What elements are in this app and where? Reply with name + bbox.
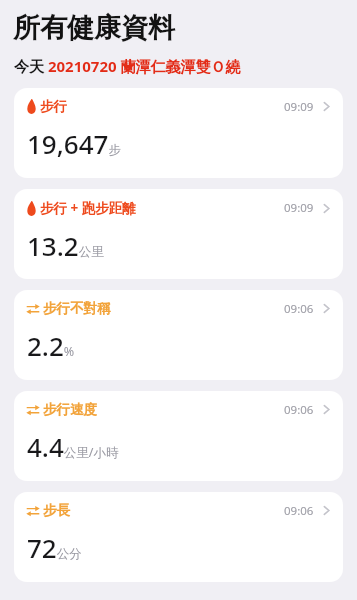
staticText: 09:06 — [284, 301, 314, 317]
staticText: 今天 20210720 蘭潭仁義潭雙Ｏ繞 — [14, 56, 241, 76]
other: Open details — [322, 302, 331, 315]
staticText: 所有健康資料 — [13, 11, 175, 45]
other: Gait metric icon — [26, 403, 40, 417]
staticText: 4.4公里/小時 — [27, 429, 119, 464]
button[interactable]: Walking flame icon — [14, 189, 343, 279]
staticText: 09:09 — [284, 99, 314, 115]
other: Gait metric icon — [26, 302, 40, 316]
staticText: 13.2公里 — [27, 228, 104, 263]
other: Open details — [322, 100, 331, 113]
button[interactable]: Gait metric icon — [14, 290, 343, 380]
other: Open details — [322, 504, 331, 517]
staticText: 19,647步 — [27, 126, 121, 161]
staticText: 步行 — [40, 98, 67, 115]
other: Walking flame icon — [26, 99, 37, 114]
button[interactable]: Gait metric icon — [14, 492, 343, 582]
staticText: 72公分 — [27, 530, 82, 565]
other: Open details — [322, 202, 331, 215]
other: Gait metric icon — [26, 504, 40, 518]
staticText: 步行速度 — [43, 401, 97, 418]
other: Walking flame icon — [26, 201, 37, 216]
button[interactable]: Walking flame icon — [14, 88, 343, 178]
other: Open details — [322, 403, 331, 416]
staticText: 09:09 — [284, 200, 314, 216]
staticText: 09:06 — [284, 503, 314, 519]
staticText: 步行 + 跑步距離 — [40, 199, 136, 217]
staticText: 步行不對稱 — [43, 300, 111, 317]
staticText: 2.2% — [27, 328, 75, 363]
button[interactable]: Gait metric icon — [14, 391, 343, 481]
staticText: 09:06 — [284, 402, 314, 418]
staticText: 步長 — [43, 502, 70, 519]
